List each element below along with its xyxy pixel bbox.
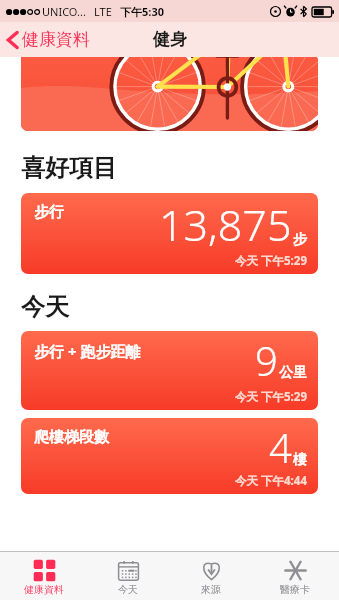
button[interactable]: Sources (172, 555, 250, 596)
button[interactable]: Today (89, 555, 167, 596)
staticText: 樓 (293, 451, 307, 469)
staticText: 步行 (34, 203, 64, 222)
staticText: 爬樓梯段數 (34, 428, 109, 447)
staticText: 步行 + 跑步距離 (34, 341, 141, 361)
button[interactable]: Health Data (5, 555, 83, 596)
staticText: 13,875 (159, 195, 292, 254)
staticText: 健康資料 (24, 583, 64, 596)
button[interactable]: Medical ID (256, 555, 334, 596)
staticText: 今天 下午4:44 (235, 473, 307, 489)
staticText: 今天 下午5:29 (235, 253, 307, 269)
staticText: 9 (255, 333, 278, 387)
staticText: 健身 (153, 29, 187, 50)
staticText: LTE (94, 4, 112, 19)
staticText: 今天 (118, 583, 138, 596)
button[interactable]: 爬樓梯段數 (21, 418, 318, 494)
staticText: 步 (293, 231, 307, 249)
staticText: 來源 (201, 583, 221, 596)
staticText: UNICO... (42, 4, 86, 19)
button[interactable]: 步行 + 跑步距離 (21, 331, 318, 410)
staticText: 健康資料 (22, 29, 90, 50)
button[interactable]: 步行 (21, 193, 318, 274)
staticText: 今天 下午5:29 (235, 389, 307, 405)
button[interactable] (21, 57, 318, 131)
staticText: 公里 (279, 364, 307, 382)
staticText: 醫療卡 (280, 583, 310, 596)
staticText: 4 (269, 420, 292, 474)
staticText: 今天 (21, 292, 69, 322)
staticText: 喜好項目 (21, 153, 117, 183)
staticText: 下午5:30 (120, 4, 164, 19)
button[interactable]: 健康資料 (0, 25, 98, 54)
